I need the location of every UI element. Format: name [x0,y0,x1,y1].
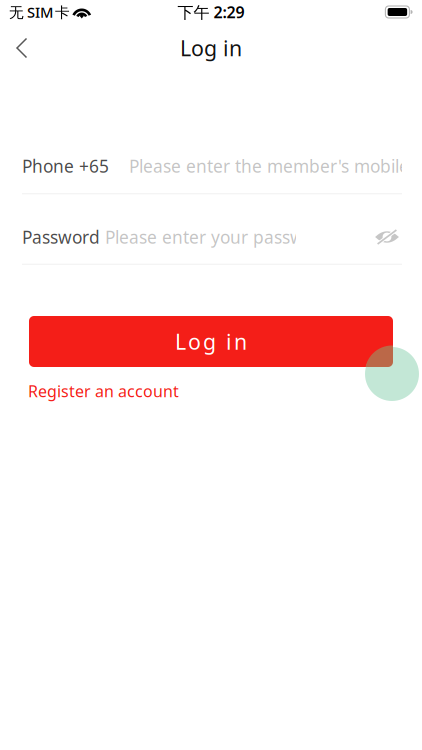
button[interactable]: Log in [29,316,393,367]
staticText: Log in [180,34,242,62]
staticText: Phone +65 [22,154,109,177]
button[interactable]: Register an account [28,381,179,401]
staticText: Please enter your password [105,225,332,248]
staticText: Please enter the member's mobile phone n… [129,154,422,177]
staticText: 无 SIM 卡 [9,2,70,22]
staticText: 下午 2:29 [177,1,244,23]
button[interactable]: Back [0,26,44,70]
staticText: Register an account [28,380,179,402]
staticText: Log in [175,327,247,356]
staticText: Password [22,225,100,248]
button[interactable]: Show password [365,220,409,254]
